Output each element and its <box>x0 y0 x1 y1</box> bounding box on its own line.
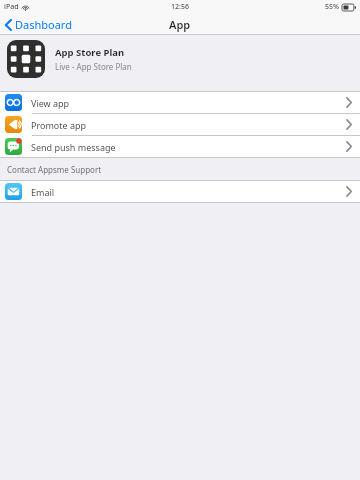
button[interactable]: Send push message <box>0 136 360 157</box>
button[interactable]: Promote app <box>0 114 360 135</box>
staticText: App <box>169 17 191 32</box>
staticText: Dashboard <box>15 17 72 32</box>
button[interactable]: Email <box>0 181 360 202</box>
button[interactable]: Dashboard <box>0 15 80 34</box>
staticText: Email <box>31 186 55 198</box>
staticText: Contact Appsme Support <box>7 164 102 175</box>
staticText: 12:56 <box>171 2 189 12</box>
staticText: iPad <box>4 2 19 12</box>
button[interactable]: App Store Plan <box>0 35 360 83</box>
staticText: Send push message <box>31 141 116 153</box>
staticText: Live - App Store Plan <box>55 61 132 72</box>
staticText: App Store Plan <box>55 46 125 59</box>
button[interactable]: View app <box>0 92 360 113</box>
staticText: View app <box>31 97 70 109</box>
staticText: 55% <box>325 2 339 12</box>
staticText: Promote app <box>31 119 87 131</box>
